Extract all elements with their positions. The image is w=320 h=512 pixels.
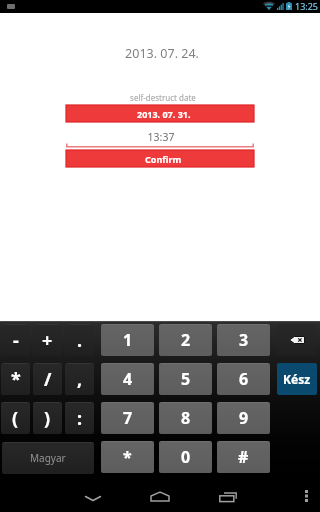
button[interactable]: Confirm — [66, 150, 254, 167]
button[interactable]: , — [65, 363, 94, 395]
staticText: ) — [44, 406, 51, 431]
staticText: 2013. 07. 31. — [137, 108, 191, 120]
button[interactable]: # — [217, 441, 270, 473]
staticText: 1 — [123, 329, 133, 351]
button[interactable]: 4 — [101, 363, 154, 395]
staticText: Kész — [283, 371, 311, 387]
staticText: * — [11, 367, 21, 392]
staticText: # — [238, 446, 249, 468]
button[interactable]: Home — [143, 485, 177, 507]
staticText: 8 — [181, 407, 191, 429]
button[interactable]: More options — [296, 485, 316, 507]
staticText: 2013. 07. 24. — [2, 45, 320, 62]
staticText: * — [123, 446, 132, 468]
staticText: ( — [12, 406, 19, 431]
staticText: 0 — [181, 446, 191, 468]
staticText: 5 — [181, 368, 191, 390]
button[interactable]: Backspace — [277, 324, 317, 356]
button[interactable]: Hide keyboard — [75, 485, 110, 507]
staticText: 4 — [123, 368, 133, 390]
staticText: - — [13, 328, 19, 353]
button[interactable]: * — [101, 441, 154, 473]
staticText: / — [44, 367, 52, 392]
button[interactable]: 6 — [217, 363, 270, 395]
button[interactable]: / — [33, 363, 62, 395]
staticText: + — [42, 328, 53, 353]
staticText: 2 — [181, 329, 191, 351]
button[interactable]: - — [1, 324, 30, 356]
button[interactable]: . — [65, 324, 94, 356]
staticText: . — [77, 328, 83, 353]
button[interactable]: Kész — [277, 363, 317, 395]
staticText: 9 — [239, 407, 249, 429]
button[interactable]: 3 — [217, 324, 270, 356]
staticText: 3 — [239, 329, 249, 351]
staticText: 13:37 — [1, 130, 320, 144]
button[interactable]: ( — [1, 402, 30, 434]
button[interactable]: : — [65, 402, 94, 434]
button[interactable]: 2 — [159, 324, 212, 356]
button[interactable]: 0 — [159, 441, 212, 473]
button[interactable]: 9 — [217, 402, 270, 434]
button[interactable]: 1 — [101, 324, 154, 356]
button[interactable]: 5 — [159, 363, 212, 395]
button[interactable]: ) — [33, 402, 62, 434]
staticText: : — [77, 406, 83, 431]
staticText: Magyar — [30, 451, 66, 465]
button[interactable]: + — [33, 324, 62, 356]
button[interactable]: 2013. 07. 31. — [66, 105, 254, 122]
button[interactable]: Magyar — [2, 442, 94, 474]
button[interactable]: 8 — [159, 402, 212, 434]
button[interactable]: 7 — [101, 402, 154, 434]
button[interactable]: Recent apps — [211, 485, 245, 507]
staticText: 6 — [239, 368, 249, 390]
button[interactable]: * — [1, 363, 30, 395]
staticText: , — [77, 367, 83, 392]
staticText: 13:25 — [295, 0, 319, 12]
staticText: self-destruct date — [3, 92, 320, 103]
staticText: 7 — [123, 407, 133, 429]
staticText: Confirm — [145, 153, 182, 165]
